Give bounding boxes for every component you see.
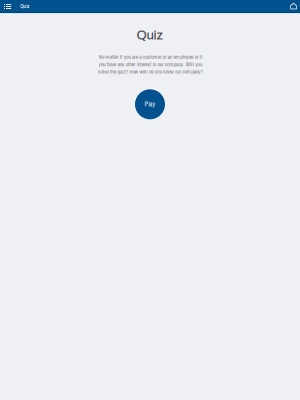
button[interactable]: Open menu	[0, 0, 15, 12]
button[interactable]: Play	[135, 89, 165, 119]
staticText: Play	[144, 100, 155, 109]
staticText: Quiz	[136, 28, 163, 42]
button[interactable]: Quiz	[15, 0, 34, 12]
staticText: Quiz	[20, 2, 29, 10]
button[interactable]: Home	[287, 0, 300, 12]
staticText: No matter if you are a customer or an em…	[98, 53, 202, 75]
